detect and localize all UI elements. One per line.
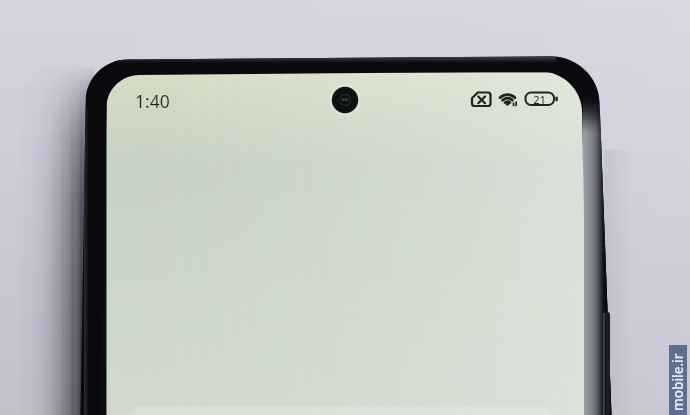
button[interactable]: Phone product photo	[0, 0, 690, 415]
